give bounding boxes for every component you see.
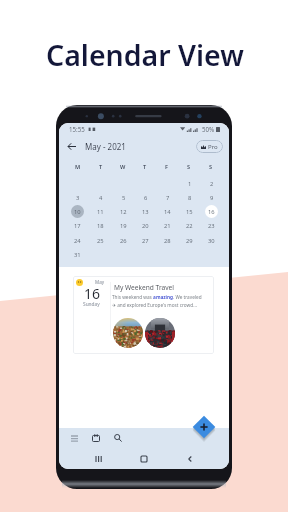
staticText: 6 bbox=[144, 194, 148, 202]
staticText: 10 bbox=[74, 208, 81, 216]
button[interactable]: 12 bbox=[117, 205, 130, 218]
button[interactable]: Recents bbox=[91, 452, 105, 466]
button[interactable]: 14 bbox=[161, 205, 174, 218]
button[interactable]: Back bbox=[183, 452, 197, 466]
button[interactable]: 17 bbox=[71, 219, 84, 232]
staticText: 9 bbox=[210, 194, 214, 202]
staticText: 22 bbox=[186, 222, 193, 230]
button[interactable]: 31 bbox=[71, 248, 84, 261]
button[interactable]: Pro bbox=[196, 140, 223, 153]
button[interactable]: 2 bbox=[205, 177, 218, 190]
staticText: T bbox=[99, 163, 103, 171]
staticText: 25 bbox=[97, 237, 104, 245]
staticText: 50% bbox=[202, 125, 215, 133]
button[interactable]: 6 bbox=[139, 191, 152, 204]
button[interactable]: 29 bbox=[183, 234, 196, 247]
button[interactable]: 27 bbox=[139, 234, 152, 247]
staticText: 12 bbox=[120, 208, 127, 216]
staticText: 15 bbox=[186, 208, 193, 216]
button[interactable]: 10 bbox=[71, 205, 84, 218]
staticText: 23 bbox=[208, 222, 215, 230]
staticText: 16 bbox=[208, 208, 215, 216]
staticText: 4 bbox=[99, 194, 103, 202]
staticText: Calendar View bbox=[46, 36, 244, 75]
button[interactable]: 16 bbox=[205, 205, 218, 218]
button[interactable]: Home bbox=[137, 452, 151, 466]
button[interactable]: 24 bbox=[71, 234, 84, 247]
staticText: 1 bbox=[188, 180, 192, 188]
staticText: 3 bbox=[76, 194, 80, 202]
staticText: T bbox=[143, 163, 147, 171]
staticText: 24 bbox=[74, 237, 81, 245]
staticText: Pro bbox=[208, 143, 218, 151]
button[interactable]: 20 bbox=[139, 219, 152, 232]
staticText: This weekend was amazing. We traveled ✈ … bbox=[112, 294, 202, 309]
staticText: 8 bbox=[188, 194, 192, 202]
staticText: 7 bbox=[166, 194, 170, 202]
button[interactable]: 21 bbox=[161, 219, 174, 232]
button[interactable]: 13 bbox=[139, 205, 152, 218]
button[interactable]: 11 bbox=[94, 205, 107, 218]
staticText: 2 bbox=[210, 180, 214, 188]
staticText: 26 bbox=[120, 237, 127, 245]
staticText: 30 bbox=[208, 237, 215, 245]
button[interactable]: May bbox=[73, 276, 214, 354]
button[interactable]: 23 bbox=[205, 219, 218, 232]
button[interactable]: 30 bbox=[205, 234, 218, 247]
staticText: 21 bbox=[164, 222, 171, 230]
staticText: 11 bbox=[97, 208, 104, 216]
button[interactable]: 1 bbox=[183, 177, 196, 190]
staticText: 27 bbox=[142, 237, 149, 245]
staticText: May - 2021 bbox=[85, 141, 126, 152]
button[interactable]: 18 bbox=[94, 219, 107, 232]
staticText: F bbox=[165, 163, 169, 171]
staticText: 13 bbox=[142, 208, 149, 216]
staticText: S bbox=[187, 163, 191, 171]
staticText: 28 bbox=[164, 237, 171, 245]
button[interactable]: Menu bbox=[67, 431, 81, 445]
button[interactable]: 22 bbox=[183, 219, 196, 232]
staticText: 18 bbox=[97, 222, 104, 230]
button[interactable]: 19 bbox=[117, 219, 130, 232]
staticText: 31 bbox=[74, 251, 81, 259]
staticText: Sunday bbox=[83, 301, 100, 308]
staticText: 17 bbox=[74, 222, 81, 230]
button[interactable]: 8 bbox=[183, 191, 196, 204]
staticText: W bbox=[120, 163, 126, 171]
staticText: S bbox=[209, 163, 213, 171]
staticText: 19 bbox=[120, 222, 127, 230]
staticText: 15:55 bbox=[69, 125, 85, 133]
button[interactable]: Search bbox=[111, 431, 125, 445]
staticText: 16 bbox=[84, 284, 101, 303]
button[interactable]: 25 bbox=[94, 234, 107, 247]
button[interactable]: Calendar bbox=[89, 431, 103, 445]
button[interactable]: Add event bbox=[191, 414, 217, 440]
button[interactable]: 7 bbox=[161, 191, 174, 204]
staticText: My Weekend Travel bbox=[114, 283, 174, 292]
button[interactable]: 15 bbox=[183, 205, 196, 218]
button[interactable]: 26 bbox=[117, 234, 130, 247]
button[interactable]: 28 bbox=[161, 234, 174, 247]
staticText: 14 bbox=[164, 208, 171, 216]
button[interactable]: 9 bbox=[205, 191, 218, 204]
staticText: 5 bbox=[122, 194, 126, 202]
button[interactable]: 5 bbox=[117, 191, 130, 204]
button[interactable]: 4 bbox=[94, 191, 107, 204]
staticText: 20 bbox=[142, 222, 149, 230]
staticText: 29 bbox=[186, 237, 193, 245]
button[interactable]: Back bbox=[64, 139, 78, 153]
staticText: M bbox=[75, 163, 81, 171]
button[interactable]: 3 bbox=[71, 191, 84, 204]
staticText: May bbox=[95, 279, 105, 285]
